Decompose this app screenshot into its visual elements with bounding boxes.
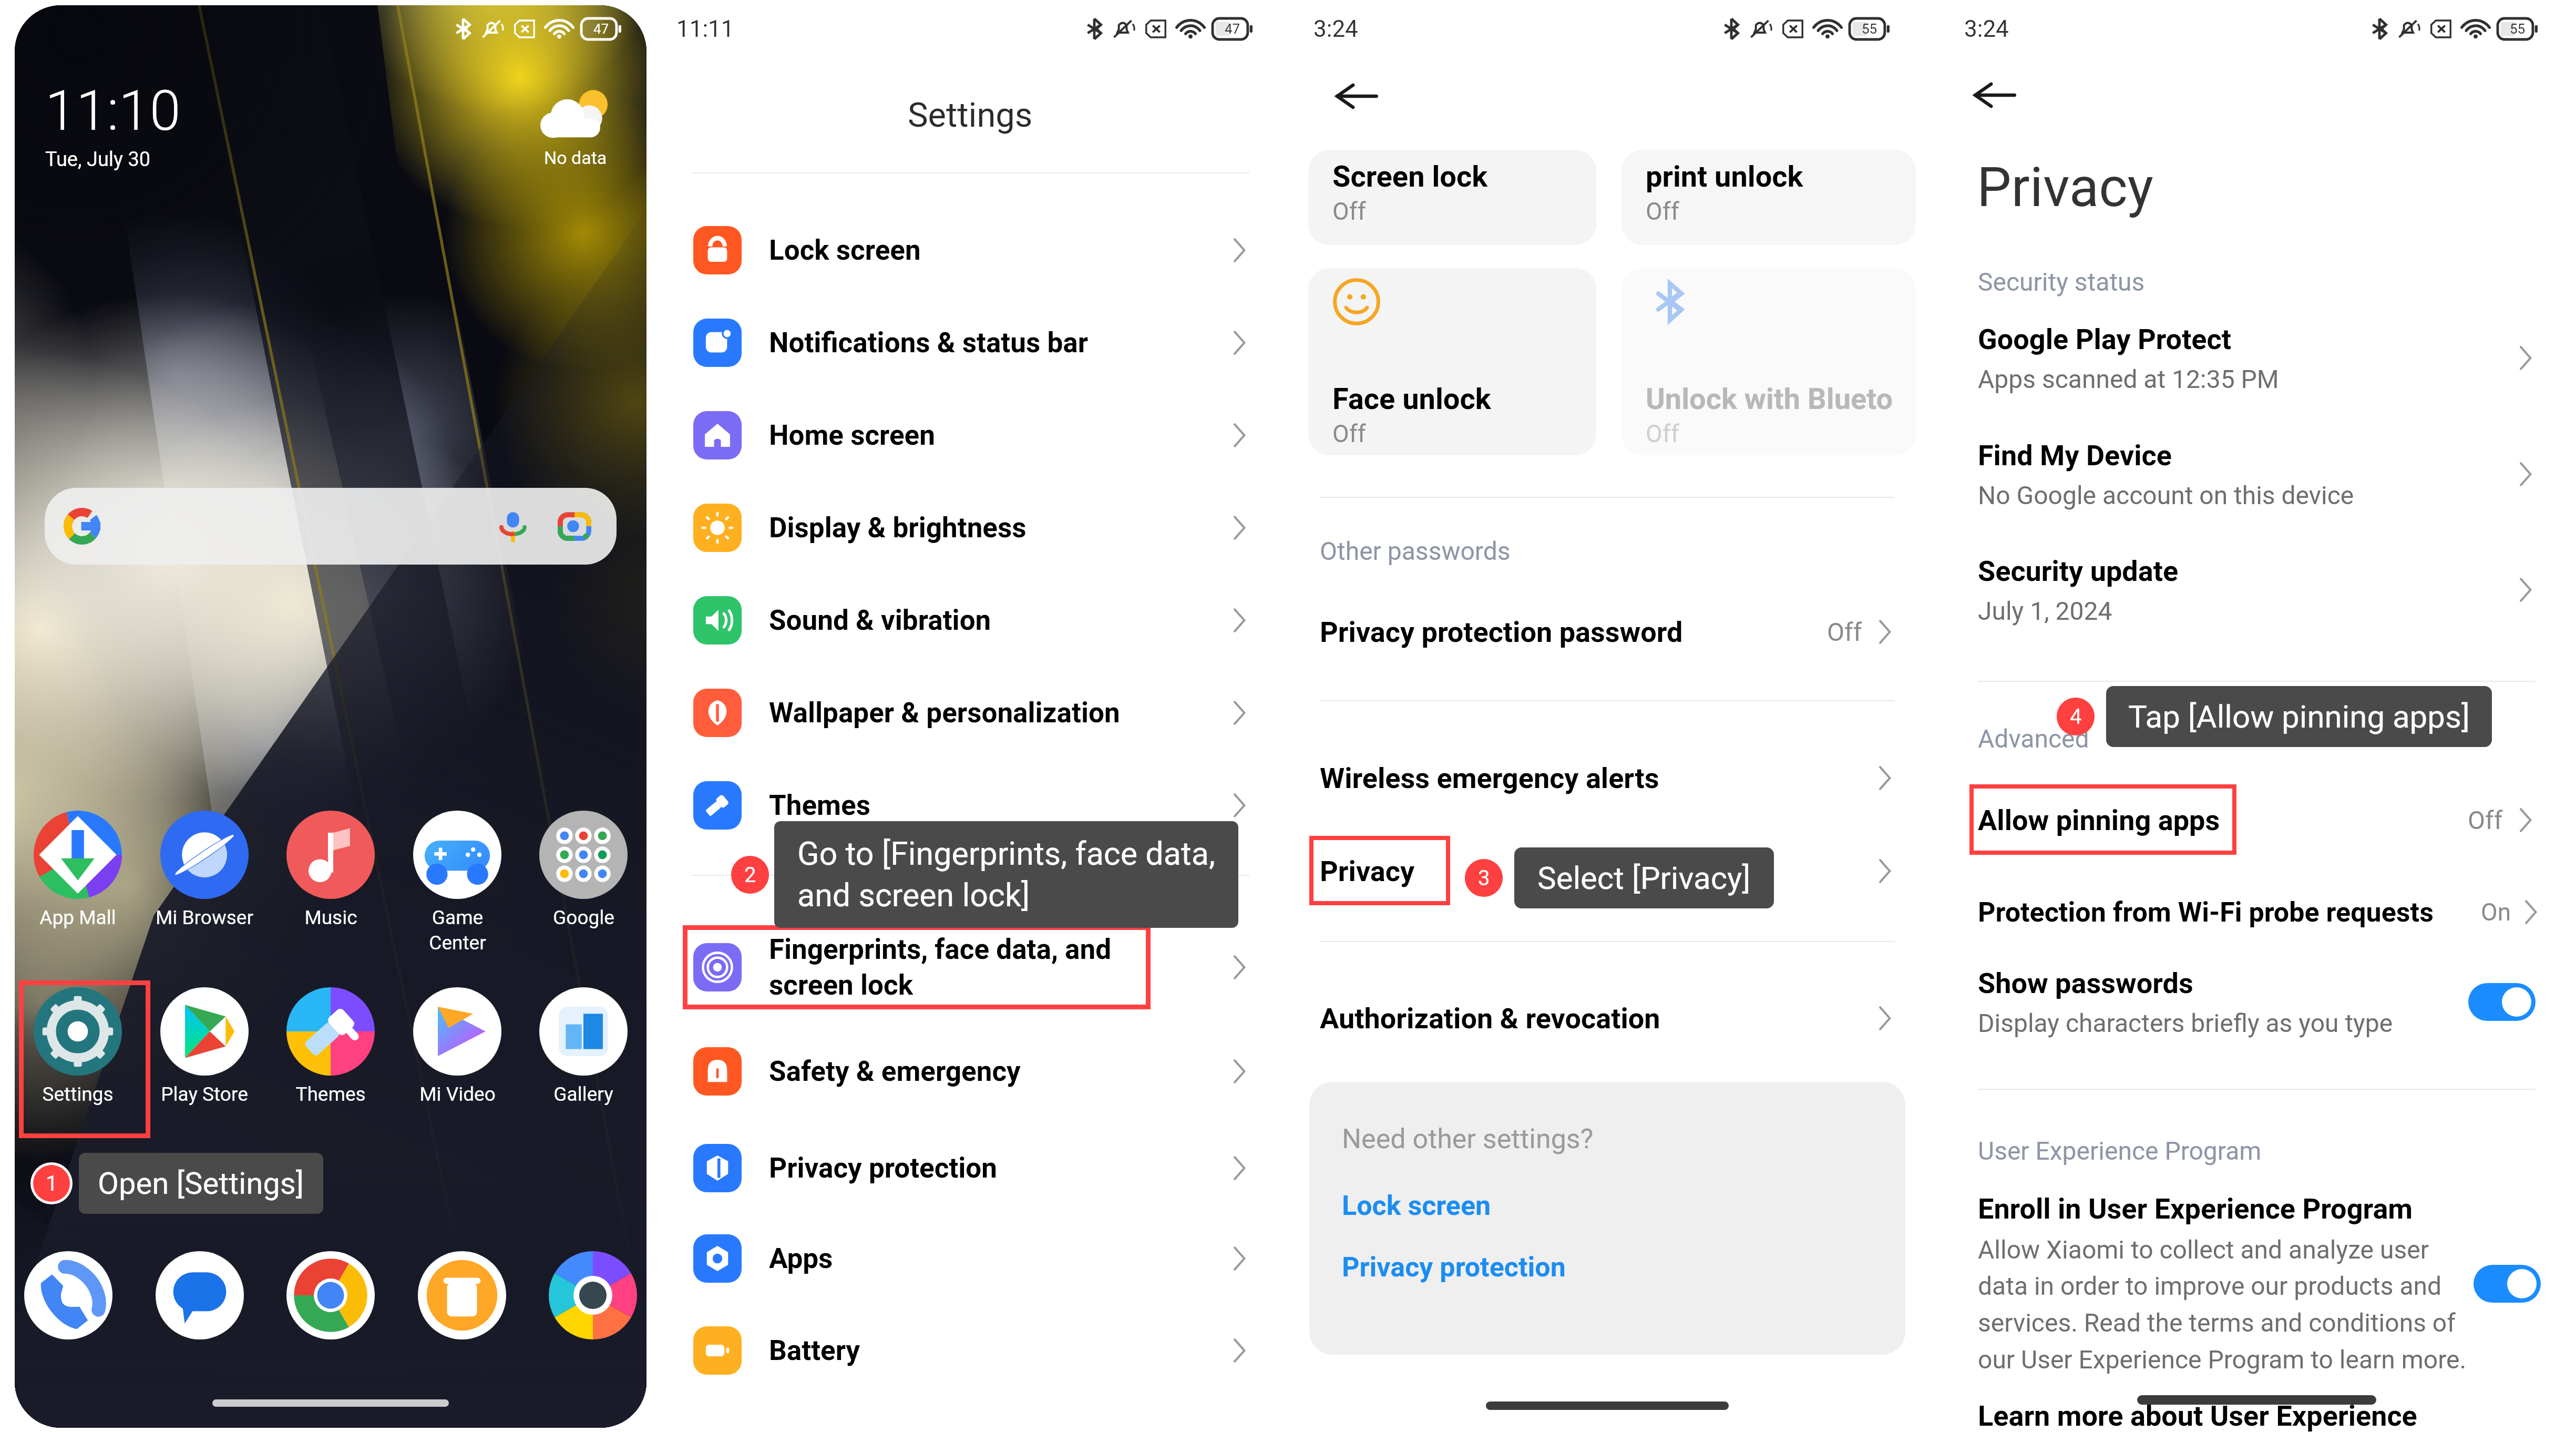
button[interactable]: Gallery: [531, 987, 636, 1106]
button[interactable]: Enroll in User Experience Program: [1978, 1192, 2541, 1375]
button[interactable]: Camera: [549, 1251, 637, 1339]
staticText: print unlock: [1646, 159, 1803, 194]
staticText: Privacy protection password: [1320, 616, 1827, 649]
button[interactable]: Voice search: [498, 511, 528, 541]
button[interactable]: Privacy protection: [658, 1123, 1283, 1213]
button[interactable]: Privacy protection: [1342, 1251, 1566, 1283]
button[interactable]: Apps: [658, 1213, 1283, 1304]
staticText: Gallery: [553, 1083, 613, 1106]
button[interactable]: Messages: [156, 1251, 244, 1339]
button[interactable]: Cleaner: [418, 1251, 506, 1339]
button[interactable]: Lock screen: [1342, 1190, 1491, 1222]
button[interactable]: Notifications & status bar: [658, 296, 1283, 389]
staticText: Battery: [769, 1334, 1228, 1367]
staticText: Mi Video: [419, 1083, 496, 1106]
button[interactable]: Themes: [278, 987, 383, 1106]
button[interactable]: Wireless emergency alerts: [1320, 743, 1895, 813]
staticText: Security status: [1978, 267, 2145, 296]
button[interactable]: Back: [1335, 79, 1379, 114]
button[interactable]: Fingerprints, face data, and screen lock: [658, 915, 1283, 1020]
staticText: Mi Browser: [156, 906, 253, 929]
button[interactable]: Privacy: [1320, 836, 1895, 906]
staticText: 47: [593, 21, 609, 37]
staticText: Home screen: [769, 419, 1228, 452]
button[interactable]: Battery: [658, 1304, 1283, 1397]
button[interactable]: print unlock: [1621, 150, 1916, 245]
button[interactable]: Mi Video: [405, 987, 510, 1106]
staticText: Enroll in User Experience Program: [1978, 1192, 2413, 1225]
staticText: Privacy: [1320, 855, 1874, 888]
staticText: 47: [1225, 21, 1240, 37]
staticText: Game Center: [429, 906, 486, 954]
staticText: Protection from Wi-Fi probe requests: [1978, 896, 2481, 928]
staticText: Face unlock: [1332, 382, 1491, 416]
button[interactable]: Lock screen: [658, 204, 1283, 296]
staticText: Themes: [295, 1083, 366, 1106]
button[interactable]: Google Lens: [558, 509, 591, 543]
staticText: Wireless emergency alerts: [1320, 762, 1874, 795]
staticText: Authorization & revocation: [1320, 1002, 1874, 1035]
staticText: Advanced: [1978, 724, 2089, 753]
staticText: Themes: [769, 789, 1228, 822]
button[interactable]: Learn more about User Experience: [1978, 1399, 2417, 1432]
staticText: Off: [1646, 420, 1679, 448]
button[interactable]: Security update: [1978, 544, 2536, 636]
button[interactable]: Google: [531, 811, 636, 929]
staticText: 55: [1862, 21, 1877, 37]
button[interactable]: Wallpaper & personalization: [658, 667, 1283, 759]
staticText: Privacy: [1977, 156, 2153, 220]
button[interactable]: Show passwords: [1978, 956, 2536, 1048]
staticText: Lock screen: [769, 234, 1228, 267]
button[interactable]: Mi Browser: [152, 811, 257, 929]
button[interactable]: Safety & emergency: [658, 1020, 1283, 1123]
button[interactable]: Voice search: [45, 488, 617, 565]
button[interactable]: Home screen: [658, 389, 1283, 482]
button[interactable]: Game Center: [405, 811, 510, 954]
staticText: Tap [Allow pinning apps]: [2128, 698, 2470, 735]
button[interactable]: Toggle: [2468, 983, 2536, 1021]
button[interactable]: Find My Device: [1978, 428, 2536, 520]
staticText: Screen lock: [1332, 159, 1488, 194]
staticText: Allow pinning apps: [1978, 804, 2468, 837]
button[interactable]: Phone: [24, 1251, 112, 1339]
button[interactable]: Screen lock: [1308, 150, 1596, 245]
button[interactable]: Chrome: [286, 1251, 375, 1339]
staticText: Wallpaper & personalization: [769, 697, 1228, 729]
button[interactable]: Music: [278, 811, 383, 929]
staticText: Apps: [769, 1242, 1228, 1275]
button[interactable]: App Mall: [25, 811, 130, 929]
button[interactable]: Back: [1973, 78, 2017, 112]
staticText: Settings: [42, 1083, 114, 1106]
button[interactable]: Toggle: [2474, 1265, 2541, 1303]
button[interactable]: Settings: [25, 987, 130, 1106]
button[interactable]: Play Store: [152, 987, 257, 1106]
button[interactable]: No data: [541, 89, 610, 168]
staticText: On: [2481, 898, 2511, 926]
button[interactable]: 11:10: [45, 78, 181, 171]
staticText: Settings: [908, 95, 1033, 135]
button[interactable]: Face unlock: [1308, 268, 1596, 455]
staticText: App Mall: [39, 906, 116, 929]
button[interactable]: Privacy protection password: [1320, 597, 1895, 667]
button[interactable]: Themes: [658, 759, 1283, 852]
staticText: 1: [46, 1171, 58, 1196]
staticText: Privacy protection: [769, 1152, 1228, 1184]
button[interactable]: Allow pinning apps: [1978, 785, 2536, 855]
staticText: Tue, July 30: [45, 148, 151, 171]
staticText: Allow Xiaomi to collect and analyze user…: [1978, 1235, 2467, 1375]
button[interactable]: Display & brightness: [658, 482, 1283, 574]
staticText: Apps scanned at 12:35 PM: [1978, 364, 2279, 394]
staticText: Select [Privacy]: [1537, 860, 1751, 896]
button[interactable]: Authorization & revocation: [1320, 984, 1895, 1053]
button[interactable]: Sound & vibration: [658, 574, 1283, 667]
button[interactable]: Unlock with Blueto: [1621, 268, 1916, 455]
staticText: Sound & vibration: [769, 604, 1228, 637]
staticText: Google Play Protect: [1978, 323, 2231, 356]
staticText: No data: [544, 147, 607, 168]
staticText: Show passwords: [1978, 967, 2193, 1000]
button[interactable]: Google Play Protect: [1978, 312, 2536, 404]
staticText: No Google account on this device: [1978, 480, 2354, 510]
staticText: 55: [2510, 21, 2526, 37]
staticText: Play Store: [161, 1083, 248, 1106]
button[interactable]: Protection from Wi-Fi probe requests: [1978, 877, 2541, 947]
